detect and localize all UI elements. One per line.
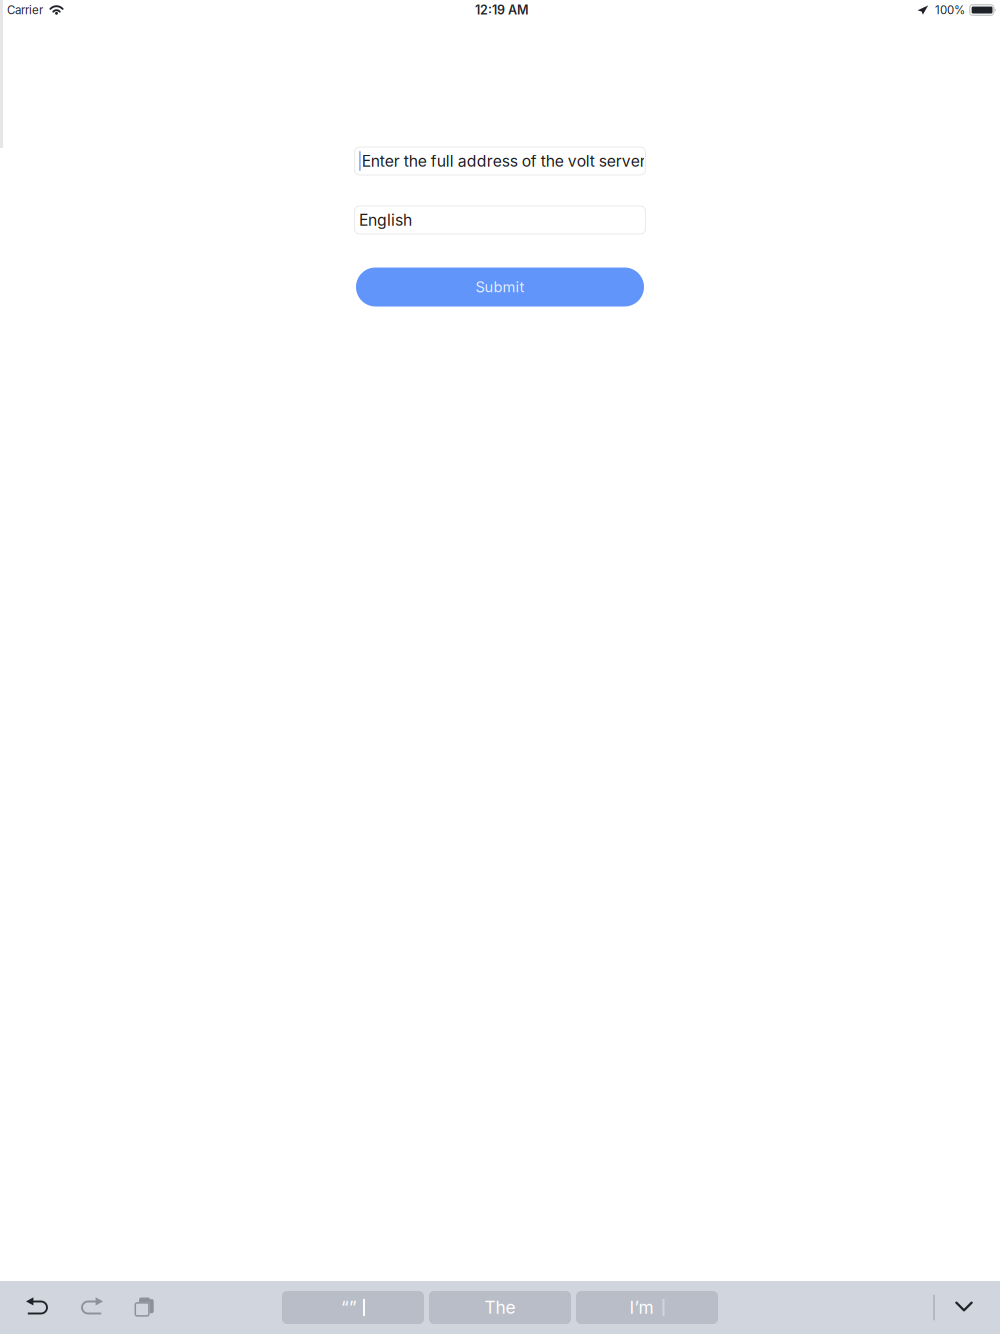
staticText: 12:19 AM bbox=[475, 2, 529, 18]
staticText: Enter the full address of the volt serve… bbox=[362, 151, 646, 170]
staticText: English bbox=[359, 210, 412, 229]
staticText: The bbox=[484, 1297, 515, 1318]
staticText: “” bbox=[341, 1297, 357, 1318]
button[interactable]: English bbox=[354, 205, 646, 234]
button[interactable]: “” bbox=[282, 1291, 424, 1324]
button[interactable]: Submit bbox=[356, 267, 644, 306]
button[interactable]: Enter the full address of the volt serve… bbox=[354, 146, 646, 175]
button[interactable]: Undo bbox=[15, 1284, 61, 1330]
button[interactable]: I’m bbox=[576, 1291, 718, 1324]
staticText: Submit bbox=[475, 278, 524, 296]
staticText: Carrier bbox=[7, 3, 43, 17]
button[interactable]: Redo bbox=[68, 1284, 114, 1330]
button[interactable]: Hide keyboard bbox=[941, 1283, 987, 1329]
staticText: 100% bbox=[935, 3, 965, 17]
button[interactable]: The bbox=[429, 1291, 571, 1324]
staticText: I’m bbox=[629, 1297, 653, 1318]
button[interactable]: Paste bbox=[121, 1284, 167, 1330]
